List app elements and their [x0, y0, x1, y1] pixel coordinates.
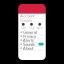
- button[interactable]: More: [36, 22, 44, 30]
- staticText: Privacy: [23, 33, 36, 39]
- staticText: Alerts: [23, 37, 34, 43]
- button[interactable]: Call: [19, 22, 27, 30]
- button[interactable]: Sounds: [18, 42, 46, 46]
- button[interactable]: Chat: [27, 22, 35, 30]
- staticText: Sounds: [23, 41, 35, 47]
- button[interactable]: Privacy: [18, 34, 46, 38]
- staticText: Account: [20, 13, 34, 18]
- button[interactable]: About: [18, 46, 46, 50]
- staticText: General: [23, 29, 37, 35]
- staticText: About: [23, 45, 33, 51]
- button[interactable]: Alerts: [18, 38, 46, 42]
- staticText: Chat: [28, 26, 34, 30]
- button[interactable]: General: [18, 30, 46, 34]
- staticText: More: [36, 26, 43, 30]
- staticText: Details: [20, 18, 32, 23]
- staticText: Call: [21, 26, 26, 30]
